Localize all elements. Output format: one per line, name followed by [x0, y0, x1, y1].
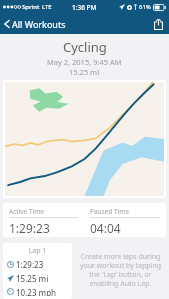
staticText: LTE — [42, 3, 52, 11]
button[interactable]: Active Time — [3, 203, 84, 237]
staticText: All Workouts — [12, 18, 66, 30]
staticText: Sprint — [22, 3, 40, 11]
staticText: 04:04 — [90, 220, 121, 236]
staticText: Paused Time — [90, 207, 130, 216]
button[interactable]: Paused Time — [84, 203, 166, 237]
staticText: 10.23 mph — [16, 287, 57, 296]
staticText: Create more laps during your workout by … — [79, 252, 162, 288]
staticText: 1:29:23 — [9, 220, 50, 236]
staticText: 15.25 mi — [69, 67, 100, 77]
staticText: 1:36 PM — [72, 3, 97, 12]
staticText: 1:29:23 — [16, 259, 44, 270]
staticText: May 2, 2015, 9:45 AM — [47, 57, 122, 67]
staticText: Lap 1 — [7, 246, 68, 256]
staticText: 15.25 mi — [16, 273, 49, 284]
staticText: 61% — [139, 3, 151, 11]
staticText: Cycling — [63, 38, 107, 56]
button[interactable]: All Workouts — [0, 15, 72, 33]
button[interactable] — [5, 82, 164, 196]
button[interactable]: Share — [148, 16, 169, 32]
staticText: Active Time — [9, 207, 44, 216]
button[interactable]: Lap 1 — [3, 243, 72, 299]
